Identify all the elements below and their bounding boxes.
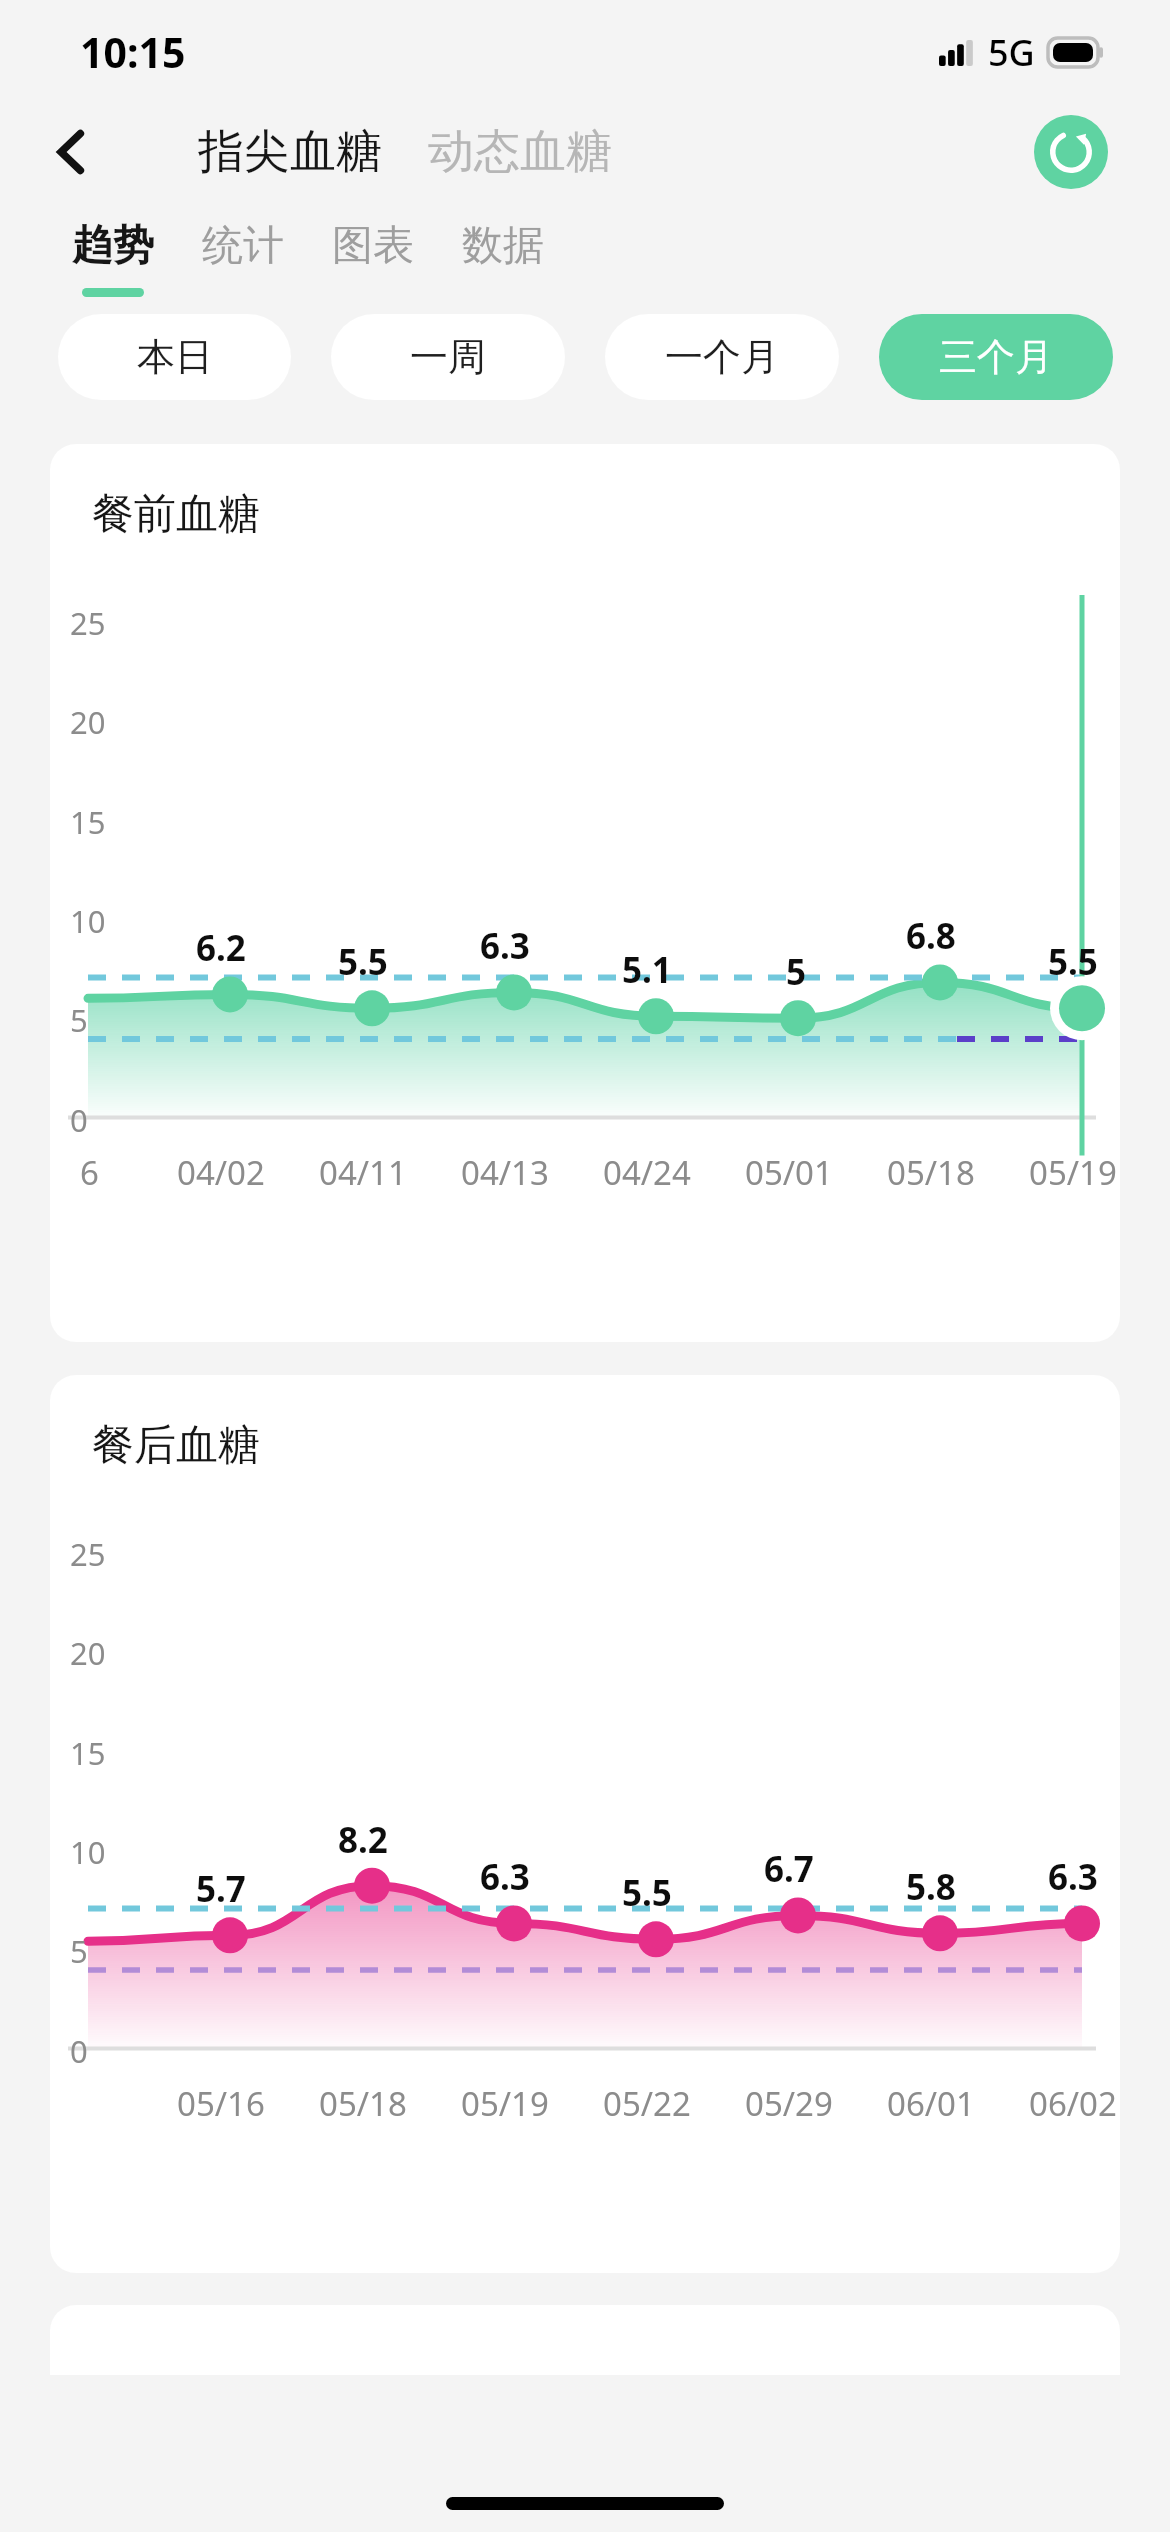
staticText: 本日 — [137, 333, 213, 381]
staticText: 6.7 — [764, 1845, 814, 1893]
staticText: 05/01 — [745, 1150, 833, 1195]
staticText: 0 — [70, 1099, 88, 1141]
staticText: 餐前血糖 — [92, 488, 260, 541]
staticText: 5.5 — [1048, 938, 1098, 986]
staticText: 数据 — [462, 220, 544, 272]
staticText: 6.2 — [196, 924, 246, 972]
staticText: 05/19 — [461, 2081, 549, 2126]
staticText: 8.2 — [338, 1816, 388, 1864]
staticText: 15 — [70, 1732, 106, 1774]
staticText: 10 — [70, 1831, 106, 1873]
staticText: 10:15 — [80, 24, 186, 80]
staticText: 6 — [80, 1150, 99, 1195]
staticText: 一周 — [410, 333, 486, 381]
button[interactable]: 趋势 — [48, 204, 178, 314]
staticText: 05/29 — [745, 2081, 833, 2126]
staticText: 5.5 — [622, 1869, 672, 1917]
staticText: 04/11 — [319, 1150, 407, 1195]
staticText: 5.7 — [196, 1865, 246, 1913]
staticText: 餐后血糖 — [92, 1419, 260, 1472]
staticText: 6.3 — [480, 1853, 530, 1901]
staticText: 05/22 — [603, 2081, 691, 2126]
staticText: 图表 — [332, 220, 414, 272]
staticText: 05/19 — [1029, 1150, 1117, 1195]
staticText: 6.3 — [1048, 1853, 1098, 1901]
button[interactable]: Back — [34, 114, 110, 190]
staticText: 20 — [70, 701, 106, 743]
staticText: 04/13 — [461, 1150, 549, 1195]
staticText: 05/18 — [887, 1150, 975, 1195]
staticText: 15 — [70, 801, 106, 843]
button[interactable]: 三个月 — [879, 314, 1113, 400]
button[interactable]: 数据 — [438, 204, 568, 314]
staticText: 0 — [70, 2030, 88, 2072]
staticText: 04/02 — [177, 1150, 265, 1195]
button[interactable]: 一周 — [331, 314, 565, 400]
staticText: 06/01 — [887, 2081, 975, 2126]
staticText: 5.8 — [906, 1863, 956, 1911]
staticText: 5 — [70, 1930, 88, 1972]
staticText: 6.3 — [480, 922, 530, 970]
staticText: 指尖血糖 — [198, 123, 382, 181]
staticText: 6.8 — [906, 912, 956, 960]
staticText: 05/16 — [177, 2081, 265, 2126]
staticText: 05/18 — [319, 2081, 407, 2126]
staticText: 统计 — [202, 220, 284, 272]
staticText: 5.5 — [338, 938, 388, 986]
button[interactable]: 图表 — [308, 204, 438, 314]
staticText: 04/24 — [603, 1150, 691, 1195]
staticText: 10 — [70, 900, 106, 942]
button[interactable]: 餐前血糖 — [50, 444, 1120, 1342]
staticText: 5 — [786, 948, 807, 996]
button[interactable]: 动态血糖 — [420, 113, 620, 191]
button[interactable]: Refresh — [1034, 115, 1108, 189]
staticText: 三个月 — [939, 333, 1053, 381]
staticText: 5.1 — [622, 946, 672, 994]
button[interactable]: 本日 — [58, 314, 291, 400]
button[interactable]: 一个月 — [605, 314, 839, 400]
staticText: 25 — [70, 1533, 106, 1575]
button[interactable]: 统计 — [178, 204, 308, 314]
staticText: 趋势 — [72, 220, 154, 272]
staticText: 动态血糖 — [428, 123, 612, 181]
staticText: 25 — [70, 602, 106, 644]
staticText: 5 — [70, 999, 88, 1041]
staticText: 5G — [988, 28, 1035, 77]
button[interactable]: 餐后血糖 — [50, 1375, 1120, 2273]
staticText: 一个月 — [665, 333, 779, 381]
staticText: 06/02 — [1029, 2081, 1117, 2126]
staticText: 20 — [70, 1632, 106, 1674]
button[interactable]: 指尖血糖 — [190, 113, 390, 191]
